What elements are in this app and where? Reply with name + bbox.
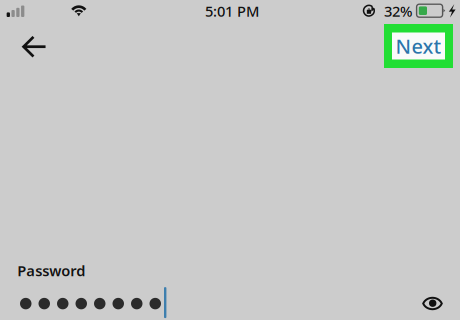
staticText: Next xyxy=(395,33,441,59)
button[interactable]: Next xyxy=(384,24,453,68)
staticText: 5:01 PM xyxy=(205,1,259,21)
button[interactable]: Back xyxy=(11,24,58,68)
button[interactable]: Show password xyxy=(413,286,451,320)
staticText: 32% xyxy=(384,1,412,21)
button[interactable]: Password field xyxy=(0,287,400,320)
staticText: Password xyxy=(17,261,85,280)
